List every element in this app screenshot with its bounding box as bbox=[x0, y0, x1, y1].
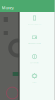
staticText: Currencies bbox=[30, 62, 39, 64]
button[interactable]: Manage categories bbox=[20, 9, 55, 29]
staticText: Manage categories bbox=[27, 23, 41, 25]
staticText: Money bbox=[2, 5, 14, 10]
button[interactable]: Settings bbox=[20, 67, 55, 86]
button[interactable]: Manage accounts bbox=[20, 29, 55, 48]
staticText: Manage accounts bbox=[28, 42, 41, 44]
button[interactable]: Currencies bbox=[20, 48, 55, 67]
staticText: Settings bbox=[32, 81, 37, 83]
